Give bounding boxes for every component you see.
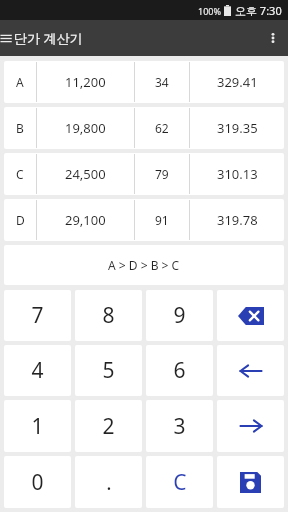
staticText: 5 (102, 356, 115, 385)
button[interactable]: 0 (4, 456, 71, 508)
button[interactable]: 9 (146, 290, 213, 341)
button[interactable]: Next (217, 400, 284, 452)
staticText: 1 (31, 412, 44, 441)
staticText: A > D > B > C (108, 257, 180, 273)
button[interactable]: 5 (75, 345, 142, 396)
button[interactable]: Save (217, 456, 284, 508)
staticText: 319.78 (217, 211, 258, 229)
staticText: 4 (31, 356, 44, 385)
staticText: 2 (102, 412, 115, 441)
button[interactable]: 6 (146, 345, 213, 396)
staticText: 3 (173, 412, 186, 441)
staticText: 6 (173, 356, 186, 385)
button[interactable]: Backspace (217, 290, 284, 341)
staticText: 0 (31, 468, 44, 497)
button[interactable]: More options (258, 20, 288, 56)
button[interactable]: C (4, 153, 284, 195)
staticText: 79 (155, 166, 169, 182)
button[interactable]: 1 (4, 400, 71, 452)
staticText: 8 (102, 301, 115, 330)
button[interactable]: A > D > B > C (4, 245, 284, 285)
staticText: 329.41 (217, 73, 258, 91)
button[interactable]: 4 (4, 345, 71, 396)
button[interactable]: A (4, 61, 284, 103)
staticText: 단가 계산기 (14, 29, 83, 47)
staticText: B (16, 120, 24, 136)
staticText: 7 (31, 301, 44, 330)
button[interactable]: D (4, 199, 284, 241)
staticText: 19,800 (65, 119, 106, 137)
button[interactable]: 3 (146, 400, 213, 452)
staticText: 100% (198, 5, 221, 17)
button[interactable]: 7 (4, 290, 71, 341)
button[interactable]: B (4, 107, 284, 149)
staticText: . (106, 469, 112, 496)
staticText: D (16, 212, 25, 228)
button[interactable]: Previous (217, 345, 284, 396)
staticText: 319.35 (217, 119, 258, 137)
button[interactable]: 8 (75, 290, 142, 341)
staticText: 오후 7:30 (235, 3, 282, 18)
button[interactable]: C (146, 456, 213, 508)
button[interactable]: 2 (75, 400, 142, 452)
staticText: 29,100 (65, 211, 106, 229)
staticText: A (16, 74, 24, 90)
button[interactable]: Menu (0, 20, 22, 56)
staticText: 310.13 (217, 165, 258, 183)
staticText: 91 (155, 212, 169, 228)
staticText: 9 (173, 301, 186, 330)
staticText: C (16, 166, 24, 182)
button[interactable]: . (75, 456, 142, 508)
staticText: 24,500 (65, 165, 106, 183)
staticText: 62 (155, 120, 169, 136)
staticText: 11,200 (65, 73, 106, 91)
staticText: 34 (155, 74, 169, 90)
staticText: C (173, 468, 187, 497)
